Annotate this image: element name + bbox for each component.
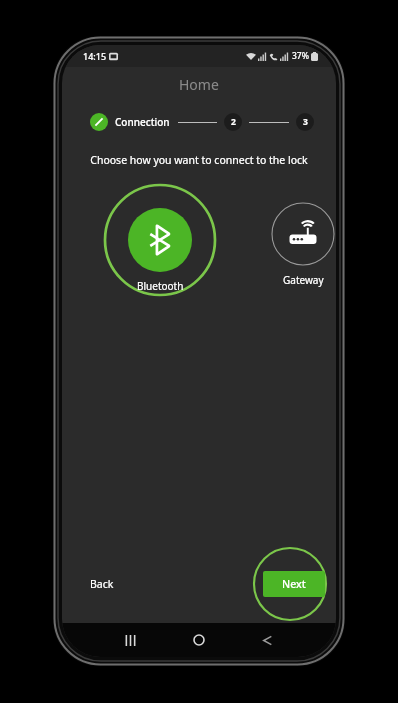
staticText: Bluetooth <box>137 279 184 293</box>
staticText: Back <box>90 577 114 591</box>
staticText: Next <box>282 577 306 591</box>
staticText: Choose how you want to connect to the lo… <box>62 153 336 167</box>
button[interactable]: Home <box>164 625 233 655</box>
staticText: Gateway <box>283 273 324 287</box>
staticText: 3 <box>303 116 308 128</box>
button[interactable]: Recents <box>96 625 164 655</box>
staticText: Home <box>179 75 219 94</box>
button[interactable]: 3 <box>296 113 314 131</box>
button[interactable]: Bluetooth <box>103 183 217 297</box>
button[interactable]: Back <box>233 625 302 655</box>
button[interactable]: 2 <box>224 113 242 131</box>
staticText: 2 <box>231 116 236 128</box>
button[interactable]: Gateway <box>258 202 336 287</box>
staticText: 14:15 <box>83 50 107 62</box>
button[interactable]: Back <box>62 571 128 597</box>
staticText: Connection <box>115 115 170 129</box>
staticText: 37% <box>292 50 309 62</box>
button[interactable]: Next <box>263 571 325 597</box>
button[interactable] <box>90 113 108 131</box>
